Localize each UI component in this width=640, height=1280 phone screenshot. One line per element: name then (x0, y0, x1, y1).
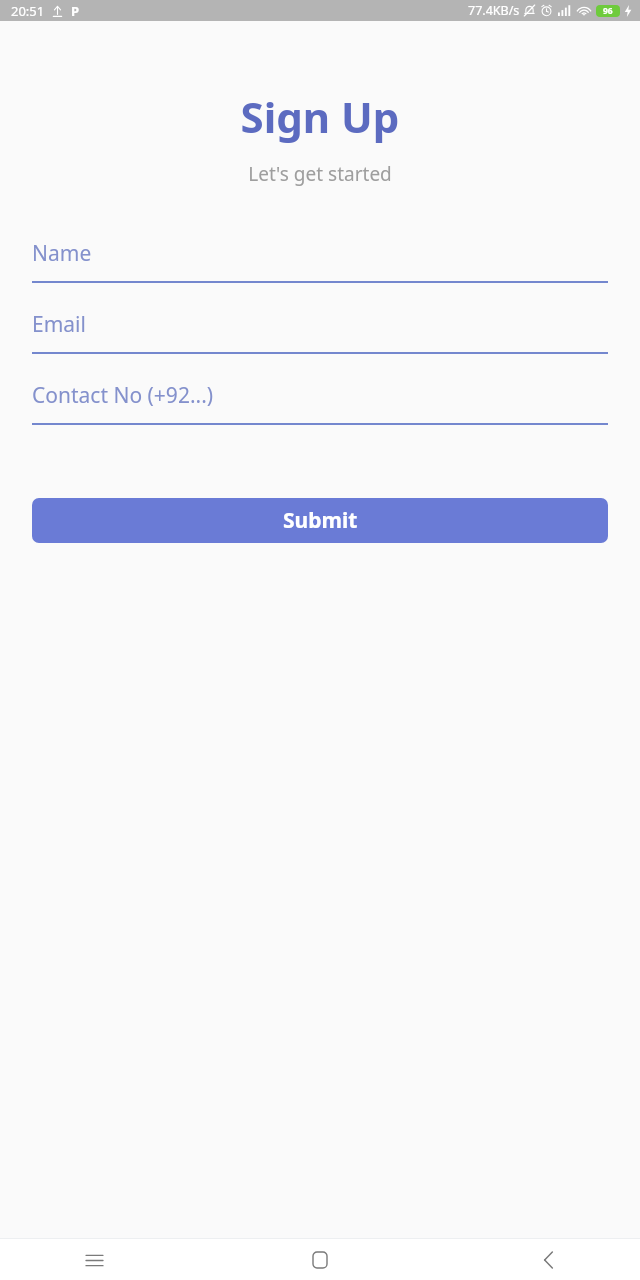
staticText: Sign Up (0, 88, 640, 145)
staticText: Contact No (+92...) (32, 381, 214, 410)
staticText: Submit (283, 506, 358, 535)
staticText: P (71, 2, 80, 20)
button[interactable]: Name (32, 239, 608, 283)
staticText: 20:51 (11, 2, 45, 20)
staticText: 77.4KB/s (468, 2, 520, 19)
staticText: Name (32, 239, 92, 268)
button[interactable]: Email (32, 310, 608, 354)
staticText: 96 (603, 5, 613, 17)
staticText: Let's get started (0, 161, 640, 187)
button[interactable]: Back (528, 1240, 568, 1280)
button[interactable]: Submit (32, 498, 608, 543)
staticText: Email (32, 310, 86, 339)
button[interactable]: Contact No (+92...) (32, 381, 608, 425)
button[interactable]: Home (300, 1240, 340, 1280)
button[interactable]: Recent apps (74, 1240, 114, 1280)
